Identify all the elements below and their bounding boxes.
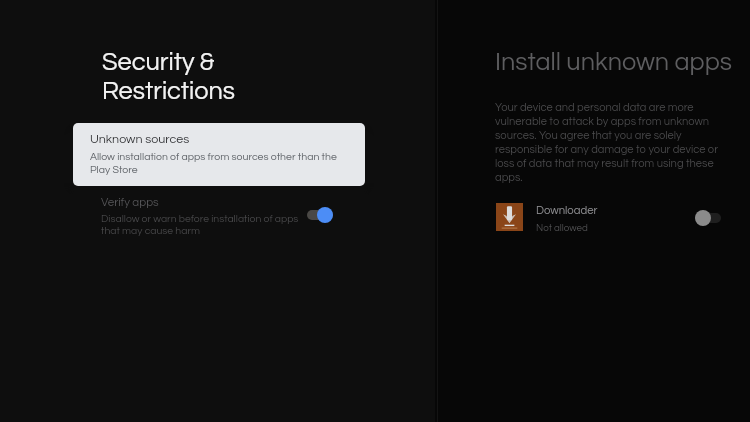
button[interactable]: Switch off <box>695 210 721 226</box>
staticText: Your device and personal data are more v… <box>495 100 723 184</box>
button[interactable]: Verify apps <box>73 188 365 244</box>
staticText: Not allowed <box>536 221 588 233</box>
button[interactable]: Unknown sources <box>73 123 365 186</box>
staticText: Security & Restrictions <box>102 47 236 105</box>
staticText: Allow installation of apps from sources … <box>90 150 342 176</box>
staticText: Verify apps <box>101 195 159 209</box>
staticText: Install unknown apps <box>495 47 732 76</box>
staticText: Unknown sources <box>90 130 190 146</box>
staticText: Disallow or warn before installation of … <box>101 213 301 237</box>
staticText: Downloader <box>536 203 598 217</box>
button[interactable]: Switch on <box>307 207 333 223</box>
button[interactable]: Downloader <box>488 198 738 240</box>
